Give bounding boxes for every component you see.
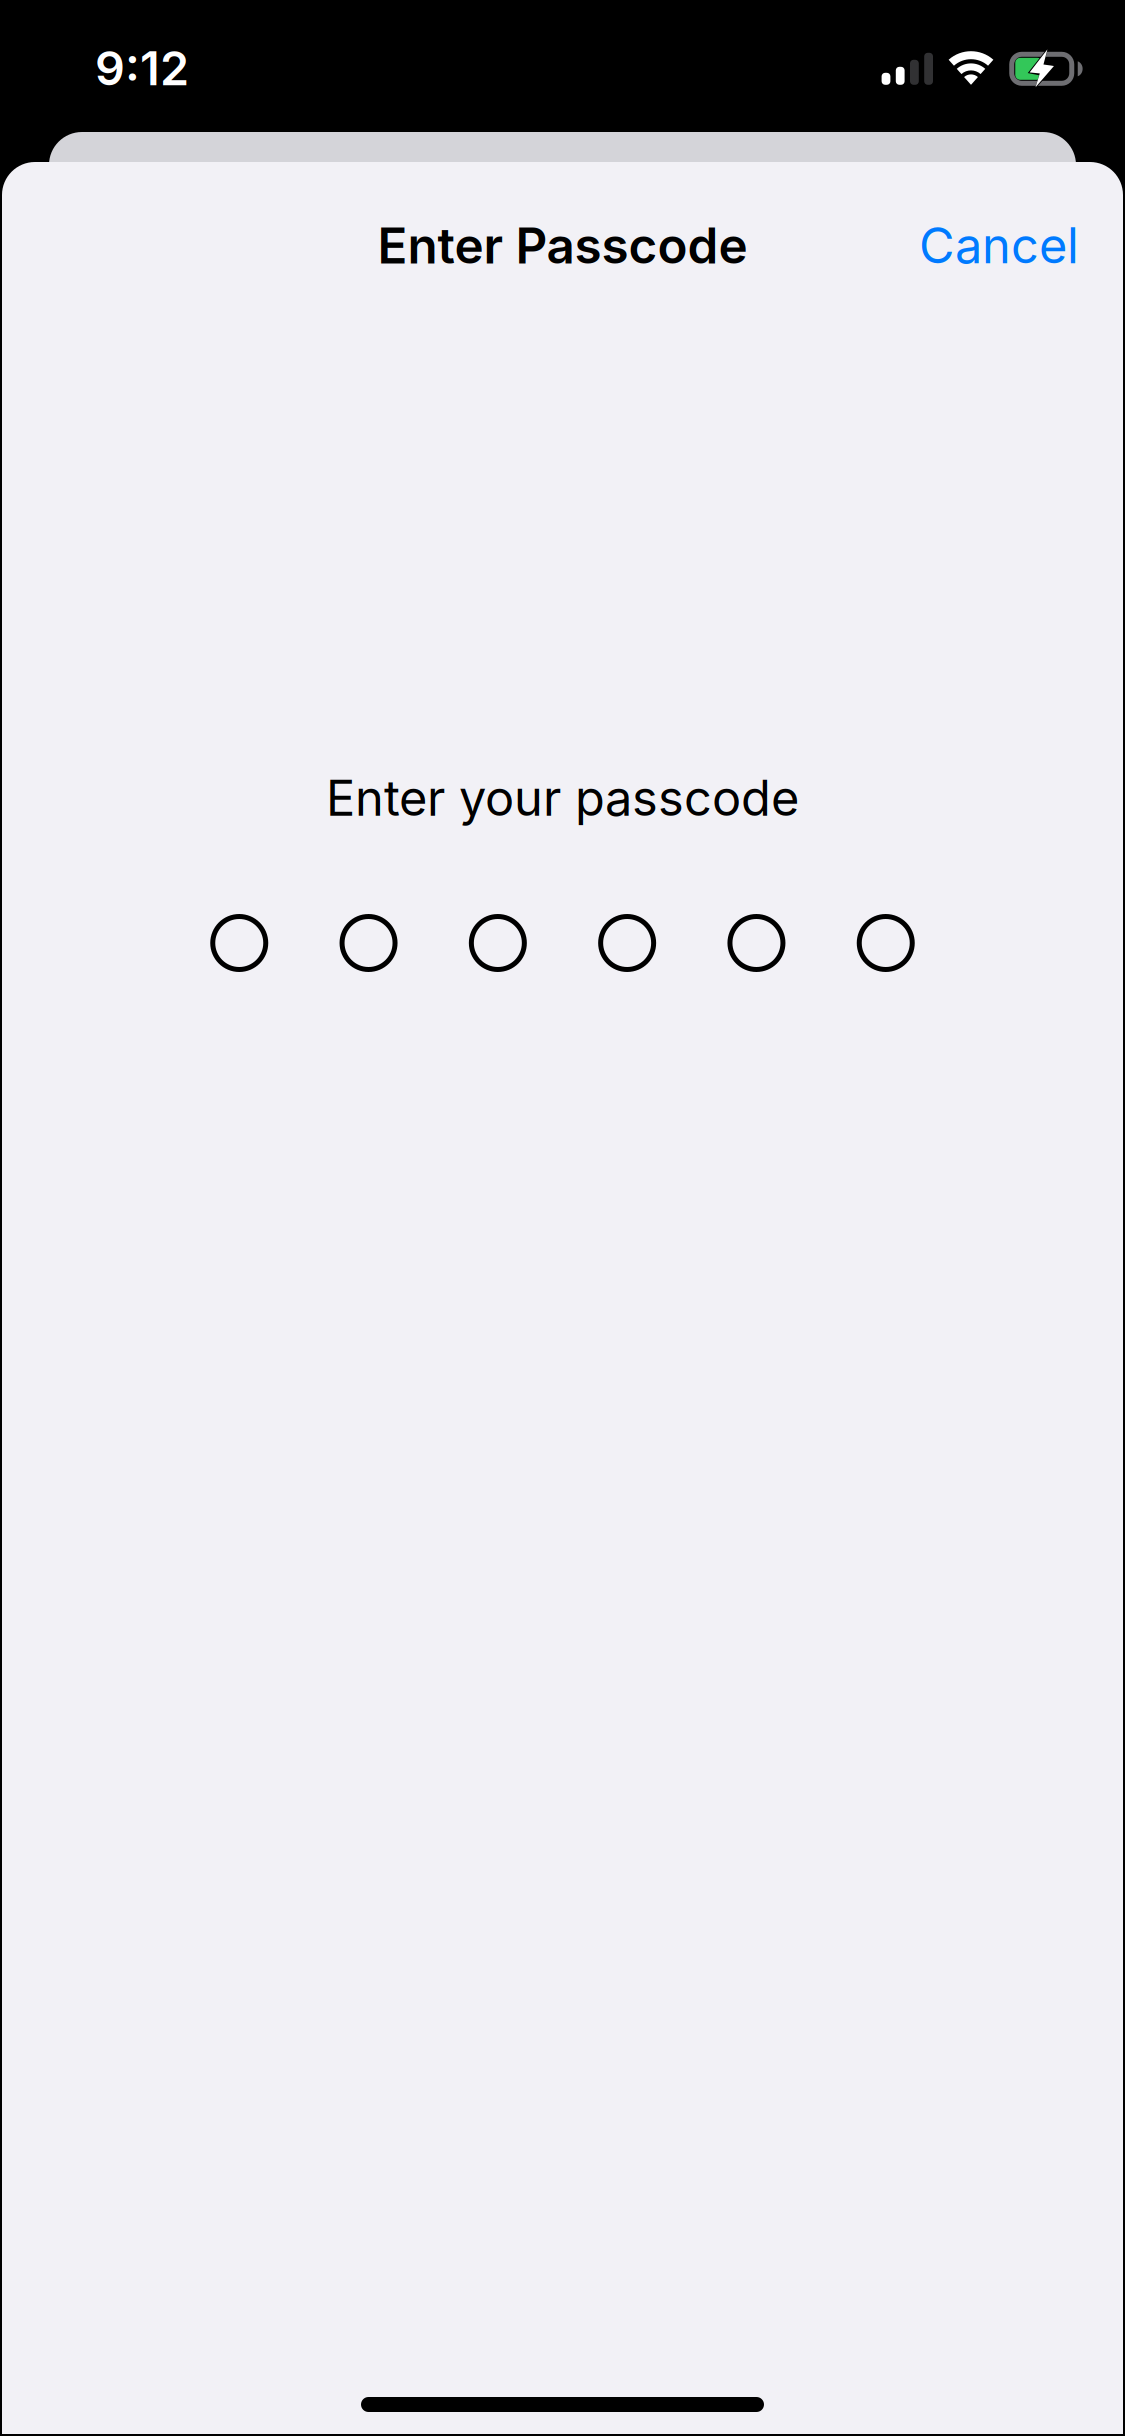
staticText: Cancel [919, 216, 1079, 275]
button[interactable]: Cancel [881, 179, 1117, 311]
staticText: Enter your passcode [326, 769, 799, 827]
staticText: Enter Passcode [377, 216, 747, 275]
staticText: 9:12 [95, 40, 189, 96]
